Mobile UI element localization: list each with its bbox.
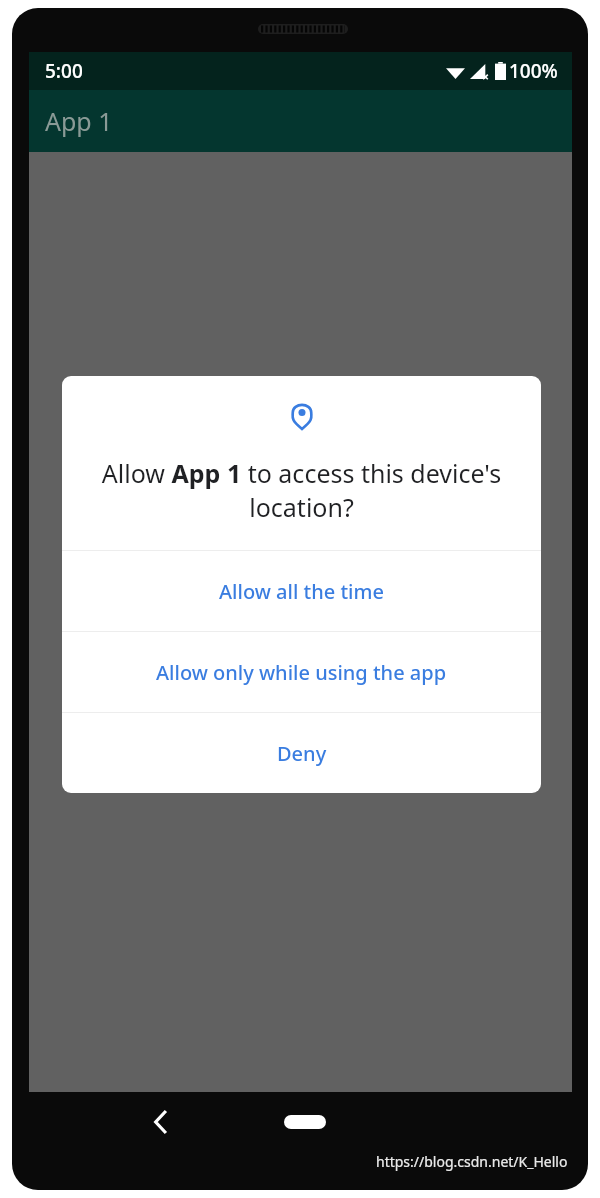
staticText: Allow all the time (219, 578, 384, 605)
button[interactable]: Allow all the time (62, 551, 541, 631)
staticText: Deny (277, 740, 327, 767)
staticText: 100% (509, 58, 558, 84)
button[interactable]: Allow only while using the app (62, 632, 541, 712)
staticText: App 1 (45, 104, 113, 138)
button[interactable]: Deny (62, 713, 541, 793)
staticText: 5:00 (45, 58, 83, 84)
button[interactable]: Home (273, 1100, 337, 1144)
staticText: https://blog.csdn.net/K_Hello (376, 1152, 568, 1171)
button[interactable]: Back (137, 1098, 185, 1146)
staticText: Allow App 1 to access this device's loca… (88, 456, 515, 524)
staticText: Allow only while using the app (156, 659, 447, 686)
